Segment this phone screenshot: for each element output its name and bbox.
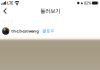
staticText: LTE [7, 0, 13, 6]
staticText: the.bestwang [11, 28, 39, 34]
staticText: 82% [84, 0, 91, 6]
staticText: 팔로우 [42, 28, 54, 33]
button[interactable]: Back [1, 6, 10, 16]
staticText: 둘러보기 [40, 8, 60, 14]
button[interactable]: the.bestwang [0, 26, 100, 36]
